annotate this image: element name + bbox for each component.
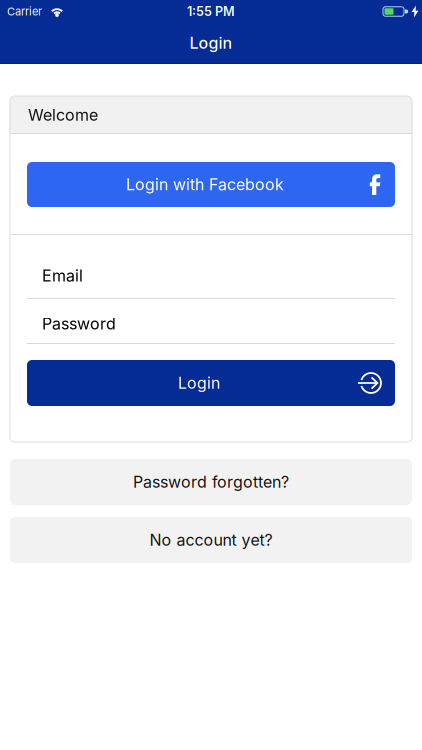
staticText: 1:55 PM (187, 4, 235, 19)
staticText: Password (42, 314, 116, 333)
staticText: Login with Facebook (126, 175, 284, 194)
staticText: Welcome (28, 105, 98, 125)
staticText: Email (42, 266, 83, 285)
staticText: No account yet? (149, 530, 272, 550)
staticText: Password forgotten? (133, 472, 289, 492)
staticText: Carrier (7, 5, 42, 18)
staticText: Login (178, 373, 220, 393)
staticText: Login (189, 33, 232, 53)
